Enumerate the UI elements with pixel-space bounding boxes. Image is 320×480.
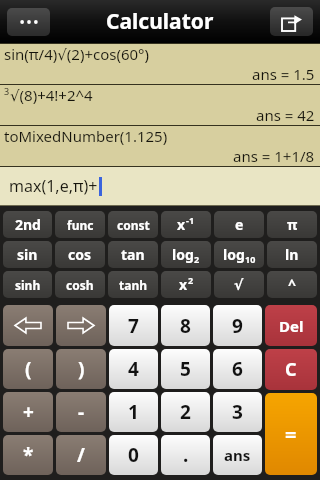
staticText: 3 [232, 399, 243, 425]
staticText: √ [234, 277, 244, 293]
staticText: sin(π/4)√(2)+cos(60°) [4, 44, 150, 64]
staticText: + [23, 399, 34, 425]
button[interactable]: C [265, 349, 317, 390]
staticText: ln [285, 245, 299, 264]
staticText: - [78, 399, 85, 425]
staticText: ans = 1.5 [252, 64, 315, 84]
staticText: -1 [186, 214, 195, 226]
staticText: e [235, 215, 244, 234]
button[interactable]: 7 [109, 305, 158, 346]
button[interactable]: 3 [213, 392, 262, 432]
button[interactable]: 8 [161, 305, 210, 346]
button[interactable]: tanh [108, 271, 158, 298]
button[interactable]: ^ [267, 271, 317, 298]
staticText: ans [224, 445, 251, 465]
button[interactable]: cosh [55, 271, 105, 298]
button[interactable]: = [265, 393, 317, 475]
button[interactable]: √ [214, 271, 264, 298]
staticText: x [177, 215, 186, 234]
button[interactable]: 2 [161, 392, 210, 432]
staticText: 2 [188, 274, 194, 286]
staticText: ans = 1+1/8 [233, 146, 315, 166]
button[interactable]: func [55, 211, 105, 238]
button[interactable]: ans [213, 435, 262, 475]
staticText: / [77, 442, 85, 468]
button[interactable]: - [56, 392, 106, 432]
staticText: 2 [194, 253, 200, 265]
staticText: ) [78, 356, 85, 382]
button[interactable]: 1 [109, 392, 158, 432]
staticText: 10 [245, 253, 256, 265]
staticText: tanh [119, 277, 147, 293]
staticText: sin [17, 245, 38, 264]
button[interactable]: π [267, 211, 317, 238]
button[interactable]: const [108, 211, 158, 238]
staticText: * [23, 442, 34, 468]
staticText: 2nd [15, 215, 41, 234]
button[interactable]: tan [108, 241, 158, 268]
button[interactable]: x [161, 211, 211, 238]
staticText: 1 [128, 399, 139, 425]
button[interactable]: Move cursor left [3, 305, 53, 346]
staticText: 2 [180, 399, 191, 425]
staticText: π [287, 215, 298, 234]
staticText: cos [68, 245, 92, 264]
staticText: ( [25, 356, 32, 382]
staticText: √(8)+4!+2^4 [10, 85, 93, 105]
button[interactable]: sinh [3, 271, 52, 298]
button[interactable]: max(1,e,π)+ [9, 167, 320, 205]
button[interactable]: 6 [213, 349, 262, 389]
staticText: sinh [15, 277, 41, 293]
button[interactable]: e [214, 211, 264, 238]
staticText: 3 [4, 85, 10, 97]
button[interactable]: Share [270, 7, 313, 36]
staticText: func [67, 217, 94, 233]
button[interactable]: log [214, 241, 264, 268]
button[interactable]: sin [3, 241, 52, 268]
button[interactable]: Del [265, 305, 317, 346]
staticText: . [183, 442, 189, 468]
button[interactable]: 3 [0, 84, 320, 125]
staticText: log [172, 245, 194, 264]
button[interactable]: sin(π/4)√(2)+cos(60°) [0, 43, 320, 84]
button[interactable]: / [56, 435, 106, 475]
staticText: toMixedNumber(1.125) [4, 126, 168, 146]
staticText: 4 [128, 356, 139, 382]
staticText: ^ [288, 275, 297, 294]
button[interactable]: 2nd [3, 211, 52, 238]
button[interactable]: cos [55, 241, 105, 268]
button[interactable]: x [161, 271, 211, 298]
button[interactable]: toMixedNumber(1.125) [0, 125, 320, 166]
staticText: log [223, 245, 245, 264]
staticText: tan [121, 245, 145, 264]
staticText: ans = 42 [256, 105, 315, 125]
button[interactable]: ( [3, 349, 53, 389]
staticText: 9 [232, 313, 243, 339]
staticText: Calculator [106, 7, 214, 36]
button[interactable]: 5 [161, 349, 210, 389]
staticText: 8 [180, 313, 191, 339]
staticText: 6 [232, 356, 243, 382]
button[interactable]: ) [56, 349, 106, 389]
staticText: C [285, 357, 297, 382]
button[interactable]: 4 [109, 349, 158, 389]
button[interactable]: Move cursor right [56, 305, 106, 346]
staticText: 5 [180, 356, 191, 382]
button[interactable]: + [3, 392, 53, 432]
button[interactable]: * [3, 435, 53, 475]
staticText: Del [279, 316, 304, 336]
staticText: max(1,e,π)+ [9, 175, 98, 197]
staticText: 0 [128, 442, 139, 468]
staticText: x [179, 275, 188, 294]
button[interactable]: 9 [213, 305, 262, 346]
button[interactable]: log [161, 241, 211, 268]
staticText: = [285, 421, 297, 448]
staticText: const [117, 217, 150, 233]
button[interactable]: ln [267, 241, 317, 268]
button[interactable]: 0 [109, 435, 158, 475]
staticText: 7 [128, 313, 139, 339]
button[interactable]: . [161, 435, 210, 475]
button[interactable]: Menu [7, 8, 50, 36]
staticText: cosh [66, 277, 94, 293]
